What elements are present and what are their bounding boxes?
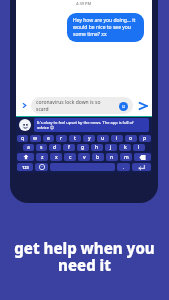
button[interactable]: s <box>36 144 47 151</box>
button[interactable]: x <box>50 153 62 161</box>
staticText: u <box>101 135 105 142</box>
staticText: i <box>116 135 118 142</box>
staticText: e <box>47 135 50 142</box>
staticText: It's okay to feel upset by the news. The… <box>37 120 146 131</box>
button[interactable]: y <box>83 135 95 142</box>
staticText: k <box>124 144 127 151</box>
staticText: n <box>110 154 114 161</box>
staticText: 123 <box>22 165 29 170</box>
button[interactable]: Shift <box>17 153 34 161</box>
button[interactable]: h <box>91 144 103 151</box>
button[interactable]: l <box>133 144 145 151</box>
button[interactable]: a <box>23 144 34 151</box>
button[interactable]: u <box>97 135 109 142</box>
staticText: a <box>27 144 30 151</box>
button[interactable]: f <box>63 144 75 151</box>
staticText: v <box>83 154 86 161</box>
staticText: coronavirus lock down is so <box>36 99 101 106</box>
button[interactable]: j <box>105 144 117 151</box>
staticText: r <box>60 135 63 142</box>
button[interactable]: It's okay to feel upset by the news. The… <box>16 117 152 133</box>
button[interactable]: 123 <box>17 163 33 171</box>
staticText: 4:39 PM <box>76 1 92 6</box>
button[interactable]: r <box>56 135 67 142</box>
button[interactable]: k <box>119 144 131 151</box>
staticText: g <box>81 144 85 151</box>
button[interactable]: z <box>36 153 48 161</box>
button[interactable]: v <box>78 153 90 161</box>
button[interactable]: Emoji <box>35 163 48 171</box>
button[interactable]: i <box>111 135 123 142</box>
button[interactable]: e <box>43 135 54 142</box>
staticText: o <box>129 135 133 142</box>
button[interactable]: o <box>125 135 137 142</box>
staticText: b <box>96 154 100 161</box>
staticText: h <box>95 144 99 151</box>
staticText: l <box>138 144 140 151</box>
staticText: j <box>110 144 112 151</box>
staticText: d <box>53 144 57 151</box>
button[interactable]: w <box>30 135 41 142</box>
staticText: p <box>143 135 147 142</box>
button[interactable]: Send <box>136 99 149 112</box>
staticText: x <box>55 154 58 161</box>
staticText: . <box>123 164 125 171</box>
staticText: s <box>40 144 43 151</box>
button[interactable]: b <box>92 153 104 161</box>
staticText: Hey how are you doing... it would be nic… <box>73 17 138 38</box>
button[interactable]: coronavirus lock down is so <box>31 97 133 114</box>
button[interactable]: n <box>106 153 118 161</box>
button[interactable]: Enter <box>132 163 151 171</box>
staticText: z <box>41 154 44 161</box>
button[interactable]: q <box>17 135 28 142</box>
staticText: m <box>124 154 129 161</box>
button[interactable]: t <box>69 135 81 142</box>
staticText: y <box>88 135 91 142</box>
button[interactable]: Space <box>50 163 115 171</box>
button[interactable]: p <box>139 135 151 142</box>
button[interactable]: Backspace <box>134 153 151 161</box>
staticText: t <box>74 135 76 142</box>
button[interactable]: . <box>117 163 130 171</box>
staticText: get help when you need it <box>12 238 157 276</box>
button[interactable]: m <box>120 153 132 161</box>
staticText: c <box>69 154 72 161</box>
staticText: f <box>68 144 70 151</box>
button[interactable]: Assistant <box>119 102 128 111</box>
button[interactable]: c <box>64 153 76 161</box>
button[interactable]: g <box>77 144 89 151</box>
staticText: w <box>33 135 38 142</box>
staticText: q <box>21 135 25 142</box>
button[interactable]: d <box>49 144 61 151</box>
button[interactable]: Expand <box>19 100 29 110</box>
staticText: scard <box>36 106 49 113</box>
